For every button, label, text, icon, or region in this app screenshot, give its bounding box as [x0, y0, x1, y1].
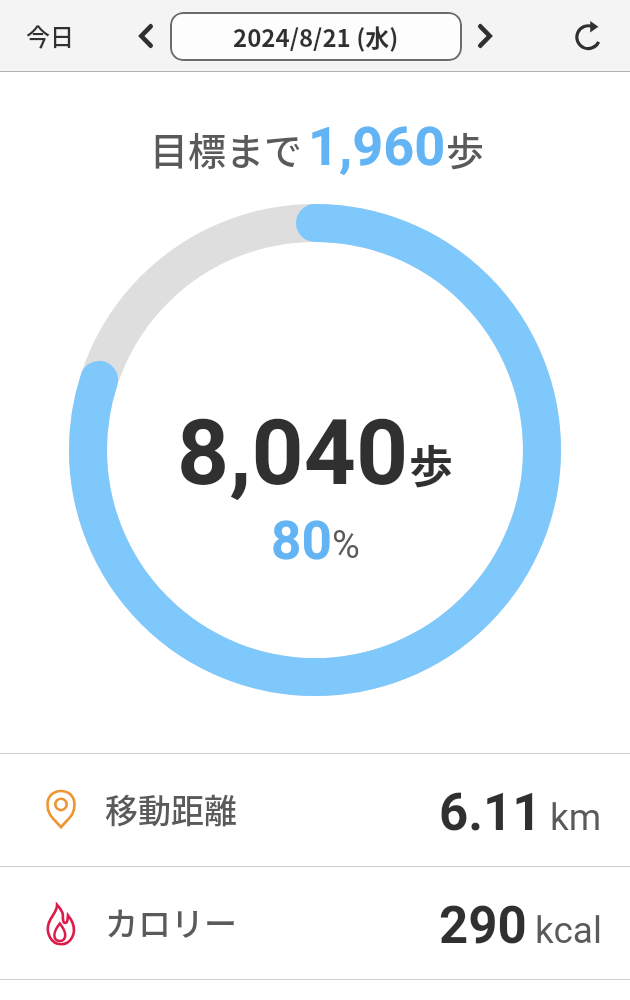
- button[interactable]: Next day: [462, 13, 508, 59]
- button[interactable]: Previous day: [123, 13, 169, 59]
- staticText: カロリー: [105, 898, 237, 946]
- staticText: 移動距離: [105, 785, 237, 833]
- button[interactable]: 移動距離: [0, 754, 630, 866]
- staticText: 歩: [409, 432, 453, 496]
- staticText: 6.11: [439, 783, 542, 843]
- button[interactable]: カロリー: [0, 867, 630, 979]
- button[interactable]: 今日: [13, 8, 87, 63]
- button[interactable]: 2024/8/21 (水): [170, 12, 462, 61]
- staticText: kcal: [535, 909, 602, 952]
- staticText: 2024/8/21 (水): [233, 19, 399, 54]
- staticText: 目標まで: [150, 121, 303, 176]
- staticText: 今日: [26, 18, 74, 53]
- staticText: 80: [271, 510, 332, 572]
- staticText: 8,040: [177, 400, 409, 507]
- button[interactable]: Refresh: [566, 12, 614, 60]
- staticText: 290: [439, 896, 527, 956]
- staticText: %: [332, 523, 360, 568]
- staticText: 歩: [446, 121, 485, 176]
- staticText: 1,960: [308, 115, 446, 178]
- staticText: km: [550, 796, 602, 839]
